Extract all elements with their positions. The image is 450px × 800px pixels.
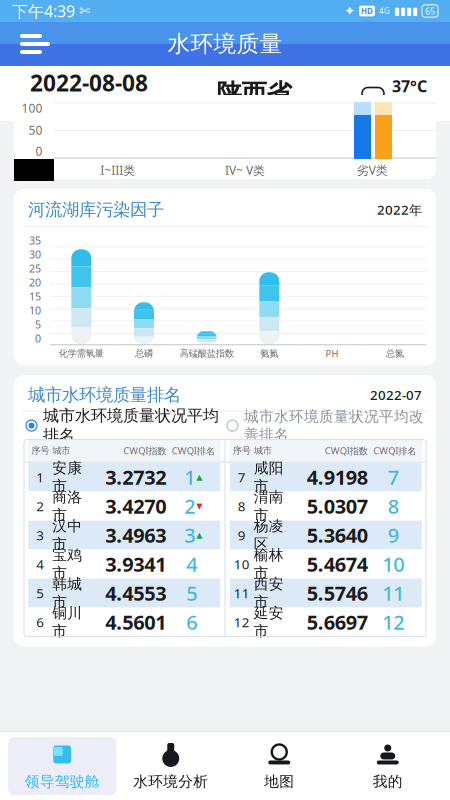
staticText: 我的 (373, 772, 403, 790)
staticText: 氨氮 (260, 348, 278, 359)
staticText: 商洛市 (52, 488, 82, 524)
staticText: 10 (29, 303, 41, 317)
staticText: ✦ (344, 3, 355, 18)
staticText: 9 (238, 526, 246, 544)
staticText: 12 (234, 613, 250, 631)
staticText: 周一 (100, 102, 124, 117)
staticText: 10 (234, 555, 250, 573)
staticText: 50 (28, 122, 42, 138)
staticText: CWQI指数 (123, 444, 166, 457)
staticText: 西安市 (254, 575, 284, 611)
button[interactable]: 城市水环境质量状况平均排名 (26, 406, 219, 445)
staticText: 12 (382, 609, 404, 635)
button[interactable]: 领导驾驶舱 (8, 737, 116, 795)
staticText: 4.4553 (105, 580, 166, 606)
staticText: 杨凌区 (254, 517, 284, 553)
staticText: 3.4963 (105, 522, 166, 548)
staticText: 10 (382, 551, 404, 577)
staticText: 陕西省 (216, 78, 291, 109)
staticText: 领导驾驶舱 (25, 772, 100, 790)
staticText: 安康市 (52, 459, 82, 495)
staticText: 地图 (264, 772, 294, 790)
staticText: 城市水环境质量状况平均改善排名 (244, 408, 424, 444)
staticText: 城市水环境质量排名 (28, 384, 181, 406)
staticText: 4 (186, 551, 197, 577)
staticText: 劣V类 (357, 162, 388, 178)
button[interactable]: 菜单 (0, 22, 64, 66)
staticText: 2022年 (377, 201, 422, 218)
staticText: CWQI指数 (325, 444, 368, 457)
staticText: 5 (186, 580, 197, 606)
staticText: 序号 (31, 445, 49, 456)
staticText: 城市 (52, 445, 70, 456)
staticText: 5.5746 (307, 580, 368, 606)
staticText: CWQI排名 (373, 444, 416, 457)
staticText: 30 (29, 247, 41, 261)
staticText: 水环境质量 (167, 30, 282, 58)
staticText: 化学需氧量 (59, 348, 104, 359)
staticText: 5 (36, 584, 44, 602)
staticText: 65 (425, 5, 435, 17)
staticText: HD (361, 6, 373, 16)
staticText: 高锰酸盐指数 (180, 348, 234, 359)
staticText: 4.5601 (105, 609, 166, 635)
staticText: 11 (382, 580, 404, 606)
staticText: 4.9198 (307, 464, 368, 490)
staticText: 19/21°C (392, 97, 432, 112)
staticText: 下午4:39 (12, 0, 75, 22)
staticText: 5 (35, 317, 41, 331)
staticText: 4 (36, 555, 44, 573)
staticText: 3 (36, 526, 44, 544)
staticText: 渭南市 (254, 488, 284, 524)
button[interactable]: 城市水环境质量状况平均改善排名 (227, 408, 424, 444)
staticText: IV~ V类 (225, 162, 265, 178)
button[interactable]: 我的 (333, 737, 442, 795)
staticText: 5.0307 (307, 493, 368, 519)
staticText: 4G (379, 6, 390, 16)
staticText: I~III类 (100, 162, 135, 178)
staticText: 25 (29, 261, 41, 275)
staticText: 城市 (254, 445, 272, 456)
staticText: 2 (36, 497, 44, 515)
staticText: 3 (184, 522, 195, 548)
staticText: 15 (29, 289, 41, 303)
staticText: 6 (186, 609, 197, 635)
button[interactable]: 水环境分析 (116, 737, 225, 795)
staticText: 16:39:48 (30, 100, 86, 119)
staticText: 汉中市 (52, 517, 82, 553)
staticText: 6 (36, 613, 44, 631)
staticText: 3.9341 (105, 551, 166, 577)
staticText: 3.2732 (105, 464, 166, 490)
staticText: 7 (388, 464, 399, 490)
staticText: ▮▮▮▮ (394, 5, 418, 17)
staticText: 1 (184, 464, 195, 490)
staticText: 1 (36, 468, 44, 486)
staticText: 2022-07 (370, 386, 422, 404)
staticText: 0 (35, 331, 41, 345)
staticText: 35 (29, 233, 41, 247)
staticText: 铜川市 (52, 604, 82, 640)
staticText: 咸阳市 (254, 459, 284, 495)
staticText: ▲ (196, 472, 202, 482)
staticText: 100 (21, 100, 42, 116)
staticText: 11 (234, 584, 250, 602)
staticText: 8 (388, 493, 399, 519)
staticText: ✄ (79, 3, 90, 18)
staticText: 河流湖库污染因子 (28, 199, 164, 220)
button[interactable]: 地图 (225, 737, 333, 795)
staticText: 9 (388, 522, 399, 548)
staticText: 城市水环境质量状况平均排名 (43, 406, 219, 445)
staticText: CWQI排名 (172, 444, 215, 457)
staticText: PH (325, 347, 338, 359)
staticText: 5.3640 (307, 522, 368, 548)
staticText: 8 (238, 497, 246, 515)
staticText: 2022-08-08 (30, 68, 148, 98)
